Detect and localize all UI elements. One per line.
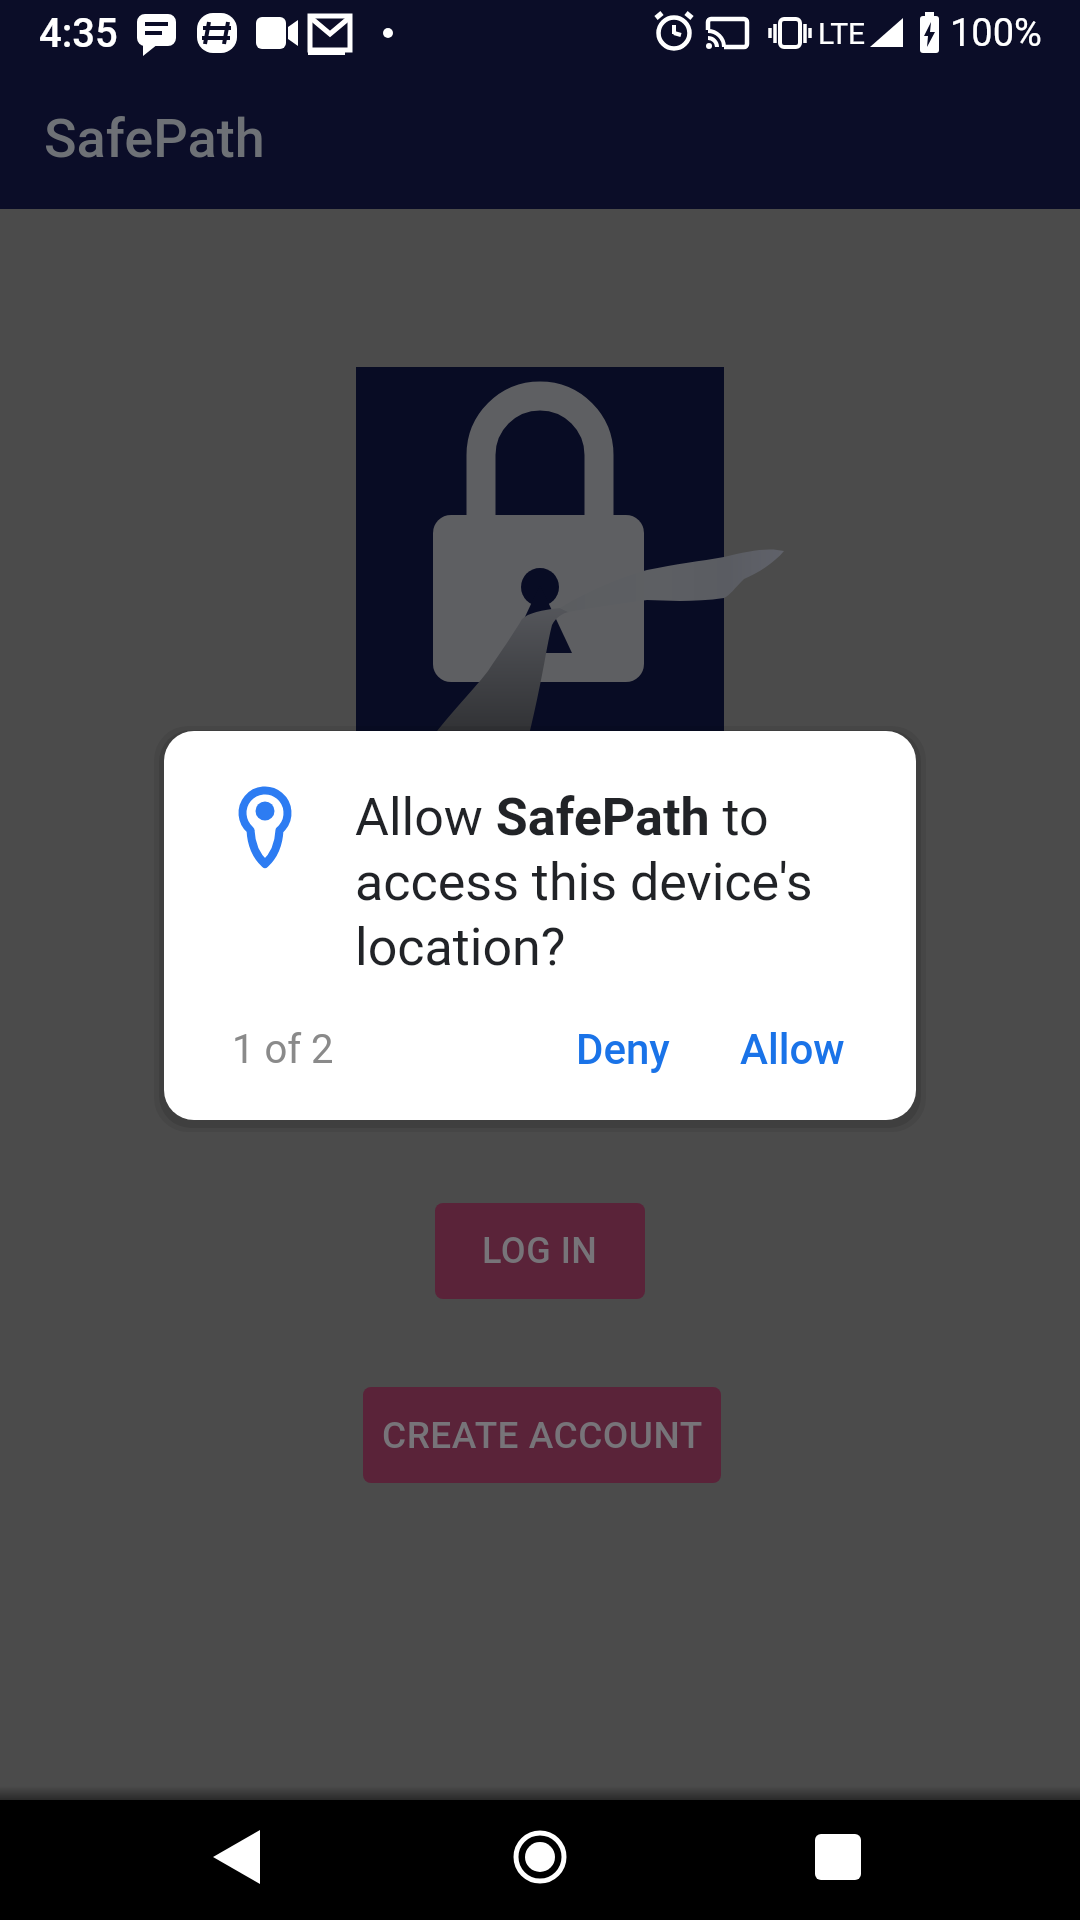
staticText: CREATE ACCOUNT	[382, 1414, 703, 1457]
staticText: 4:35	[39, 10, 118, 57]
button[interactable]: Allow	[722, 1009, 862, 1089]
button[interactable]	[0, 1800, 360, 1920]
button[interactable]	[360, 1800, 720, 1920]
staticText: Allow	[740, 1025, 845, 1074]
button[interactable]: LOG IN	[435, 1203, 645, 1299]
staticText: Allow SafePath to access this device's l…	[355, 787, 845, 978]
button[interactable]: Deny	[553, 1009, 693, 1089]
button[interactable]	[720, 1800, 1080, 1920]
staticText: LTE	[818, 16, 866, 51]
staticText: 100%	[950, 11, 1042, 56]
staticText: Deny	[576, 1025, 670, 1074]
button[interactable]: CREATE ACCOUNT	[363, 1387, 721, 1483]
staticText: 1 of 2	[232, 1026, 334, 1073]
staticText: LOG IN	[482, 1230, 598, 1272]
staticText: SafePath	[44, 107, 265, 170]
